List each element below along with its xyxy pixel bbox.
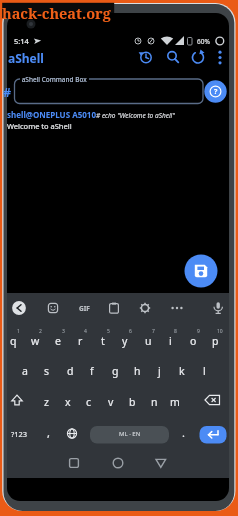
button[interactable]: o bbox=[182, 329, 204, 353]
staticText: GIF bbox=[79, 304, 90, 313]
button[interactable] bbox=[14, 79, 203, 104]
button[interactable]: , bbox=[40, 422, 56, 442]
staticText: x bbox=[65, 395, 71, 409]
staticText: hack-cheat.org bbox=[2, 3, 111, 23]
staticText: r bbox=[78, 334, 83, 348]
button[interactable]: s bbox=[36, 359, 58, 383]
staticText: j bbox=[158, 364, 161, 378]
staticText: 7 bbox=[152, 328, 155, 335]
button[interactable] bbox=[11, 300, 27, 316]
button[interactable]: c bbox=[78, 390, 100, 414]
staticText: 2 bbox=[39, 328, 42, 335]
button[interactable] bbox=[138, 49, 154, 65]
staticText: 60% bbox=[197, 37, 210, 46]
button[interactable]: q bbox=[2, 329, 24, 353]
button[interactable]: ML · EN bbox=[90, 425, 170, 443]
staticText: 9 bbox=[197, 328, 200, 335]
button[interactable]: h bbox=[126, 359, 148, 383]
staticText: f bbox=[90, 364, 94, 378]
button[interactable]: e bbox=[47, 329, 69, 353]
staticText: o bbox=[190, 334, 197, 348]
staticText: c bbox=[86, 395, 92, 409]
staticText: u bbox=[145, 334, 152, 348]
button[interactable] bbox=[153, 455, 169, 471]
staticText: i bbox=[169, 334, 172, 348]
button[interactable] bbox=[184, 254, 218, 288]
staticText: m bbox=[170, 395, 180, 409]
button[interactable]: b bbox=[121, 390, 143, 414]
staticText: 3 bbox=[62, 328, 65, 335]
button[interactable]: p bbox=[204, 329, 226, 353]
button[interactable]: . bbox=[175, 422, 191, 442]
button[interactable]: d bbox=[59, 359, 81, 383]
button[interactable] bbox=[66, 455, 82, 471]
button[interactable]: x bbox=[57, 390, 79, 414]
button[interactable]: k bbox=[171, 359, 193, 383]
staticText: ? bbox=[214, 87, 218, 97]
staticText: , bbox=[47, 425, 50, 440]
button[interactable]: f bbox=[81, 359, 103, 383]
button[interactable]: t bbox=[92, 329, 114, 353]
button[interactable]: l bbox=[193, 359, 215, 383]
button[interactable]: v bbox=[100, 390, 122, 414]
button[interactable]: n bbox=[143, 390, 165, 414]
staticText: h bbox=[134, 364, 141, 378]
staticText: l bbox=[203, 364, 206, 378]
button[interactable]: i bbox=[159, 329, 181, 353]
staticText: z bbox=[44, 395, 49, 409]
staticText: y bbox=[122, 334, 128, 348]
staticText: t bbox=[101, 334, 105, 348]
staticText: shell@ONEPLUS A5010# echo "Welcome to aS… bbox=[7, 109, 175, 120]
staticText: q bbox=[10, 334, 17, 348]
button[interactable]: w bbox=[24, 329, 46, 353]
staticText: ML · EN bbox=[119, 430, 141, 438]
button[interactable]: ? bbox=[186, 82, 238, 102]
staticText: s bbox=[44, 364, 50, 378]
staticText: 1 bbox=[17, 328, 20, 335]
button[interactable]: y bbox=[114, 329, 136, 353]
staticText: g bbox=[112, 364, 119, 378]
staticText: e bbox=[55, 334, 61, 348]
button[interactable] bbox=[110, 455, 126, 471]
staticText: 10 bbox=[217, 328, 223, 335]
button[interactable]: u bbox=[137, 329, 159, 353]
staticText: p bbox=[212, 334, 219, 348]
staticText: 8 bbox=[174, 328, 177, 335]
button[interactable]: r bbox=[69, 329, 91, 353]
button[interactable]: ?123 bbox=[5, 424, 33, 444]
button[interactable]: m bbox=[164, 390, 186, 414]
staticText: Welcome to aShell bbox=[7, 121, 72, 131]
staticText: 6 bbox=[129, 328, 132, 335]
button[interactable]: a bbox=[14, 359, 36, 383]
staticText: d bbox=[67, 364, 74, 378]
staticText: ?123 bbox=[11, 429, 28, 439]
staticText: aShell Command Box bbox=[20, 75, 89, 84]
staticText: . bbox=[182, 425, 185, 440]
staticText: n bbox=[151, 395, 158, 409]
button[interactable] bbox=[200, 426, 227, 444]
staticText: w bbox=[31, 334, 40, 348]
staticText: a bbox=[22, 364, 28, 378]
button[interactable] bbox=[212, 49, 228, 65]
staticText: k bbox=[179, 364, 185, 378]
staticText: # bbox=[3, 84, 12, 101]
staticText: 5 bbox=[107, 328, 110, 335]
staticText: b bbox=[129, 395, 136, 409]
button[interactable]: z bbox=[35, 390, 57, 414]
button[interactable] bbox=[190, 49, 206, 65]
button[interactable]: aShell bbox=[8, 50, 44, 66]
staticText: v bbox=[108, 395, 114, 409]
staticText: 5:14 bbox=[14, 36, 29, 46]
button[interactable]: j bbox=[148, 359, 170, 383]
button[interactable] bbox=[164, 49, 180, 65]
button[interactable]: GIF bbox=[54, 298, 114, 318]
button[interactable]: g bbox=[104, 359, 126, 383]
staticText: 4 bbox=[84, 328, 87, 335]
